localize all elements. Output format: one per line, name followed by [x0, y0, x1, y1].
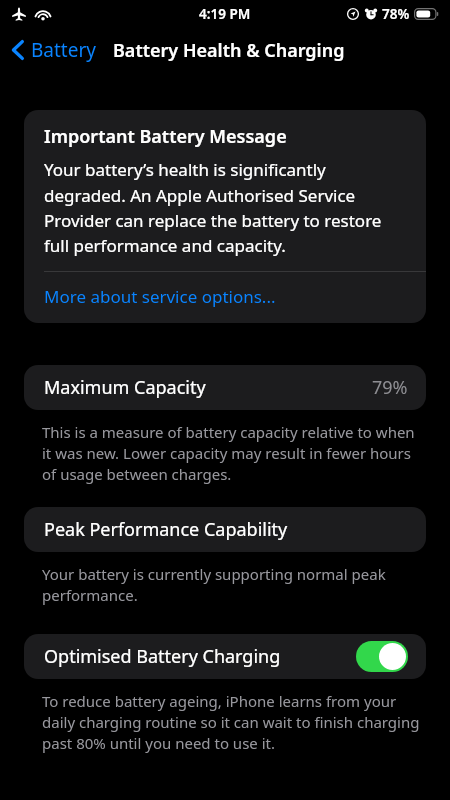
staticText: 78% — [382, 5, 410, 23]
staticText: Your battery is currently supporting nor… — [42, 564, 420, 606]
staticText: 79% — [372, 375, 408, 400]
staticText: Your battery’s health is significantly d… — [44, 158, 408, 257]
button[interactable]: Optimised Battery Charging toggle — [356, 641, 408, 672]
button[interactable]: Maximum Capacity — [24, 365, 426, 410]
staticText: Important Battery Message — [44, 124, 287, 149]
staticText: This is a measure of battery capacity re… — [42, 422, 420, 485]
staticText: Maximum Capacity — [44, 375, 372, 400]
staticText: Optimised Battery Charging — [44, 644, 356, 669]
button[interactable]: More about service options... — [24, 272, 426, 323]
button[interactable]: Peak Performance Capability — [24, 507, 426, 552]
other: Back — [12, 40, 24, 60]
staticText: To reduce battery ageing, iPhone learns … — [42, 691, 420, 754]
button[interactable]: Back — [0, 31, 104, 69]
staticText: Peak Performance Capability — [44, 517, 408, 542]
button[interactable]: Optimised Battery Charging — [24, 634, 426, 679]
staticText: More about service options... — [44, 285, 276, 308]
staticText: 4:19 PM — [199, 5, 251, 23]
staticText: Battery — [31, 37, 96, 63]
staticText: Battery Health & Charging — [113, 38, 345, 63]
